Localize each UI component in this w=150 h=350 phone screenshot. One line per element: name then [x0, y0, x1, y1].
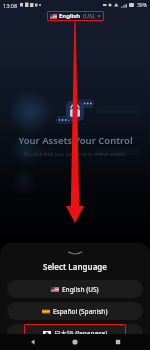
- button[interactable]: English: [50, 12, 101, 20]
- staticText: 39%: [137, 2, 147, 9]
- button[interactable]: English (US): [7, 280, 143, 298]
- button[interactable]: 日本語 (Japanese): [7, 324, 143, 342]
- staticText: 日本語 (Japanese): [54, 329, 108, 338]
- staticText: Select Language: [43, 261, 107, 272]
- button[interactable]: Back: [23, 334, 43, 350]
- staticText: No one but you can access these assets: [24, 150, 126, 157]
- staticText: English (US): [62, 285, 99, 294]
- staticText: English: [59, 12, 81, 20]
- staticText: Your Assets Your Control: [18, 134, 133, 147]
- button[interactable]: Español (Spanish): [7, 302, 143, 320]
- staticText: (US): [83, 12, 95, 20]
- button[interactable]: Home: [65, 334, 85, 350]
- button[interactable]: Recents: [108, 334, 128, 350]
- staticText: Español (Spanish): [53, 307, 108, 316]
- staticText: 13:08: [3, 2, 18, 9]
